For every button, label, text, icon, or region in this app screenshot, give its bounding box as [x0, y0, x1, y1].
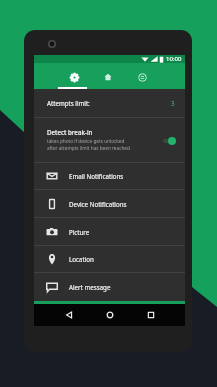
staticText: Detect break-in	[47, 128, 93, 136]
staticText: 3	[171, 99, 175, 107]
button[interactable]: Location	[34, 246, 185, 272]
button[interactable]: Device tab	[125, 63, 159, 89]
button[interactable]: Recents	[130, 304, 171, 326]
staticText: Attempts limit:	[47, 99, 90, 107]
staticText: Alert message	[69, 283, 111, 291]
button[interactable]: Email Notifications	[34, 163, 185, 189]
staticText: Location	[69, 255, 94, 263]
staticText: 10:00	[166, 55, 182, 63]
button[interactable]: Back	[48, 304, 89, 326]
button[interactable]: Attempts limit:	[34, 89, 185, 117]
button[interactable]: Settings tab	[57, 63, 91, 89]
button[interactable]: Home tab	[91, 63, 125, 89]
button[interactable]: Detect break-in	[34, 118, 185, 162]
button[interactable]: Picture	[34, 218, 185, 245]
staticText: Picture	[69, 228, 90, 236]
staticText: takes photo if device gets unlocked afte…	[47, 138, 130, 152]
button[interactable]: Alert message	[34, 273, 185, 300]
staticText: Email Notifications	[69, 172, 124, 180]
button[interactable]: Device Notifications	[34, 190, 185, 217]
staticText: Device Notifications	[69, 200, 127, 208]
button[interactable]: Home	[89, 304, 130, 326]
